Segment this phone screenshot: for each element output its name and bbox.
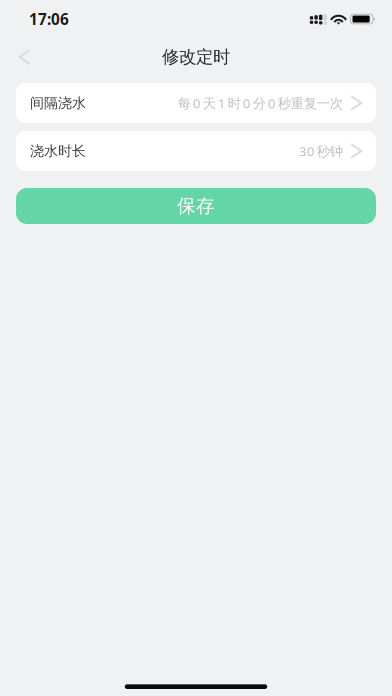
button[interactable]: Back [0, 38, 45, 76]
staticText: 17:06 [29, 9, 69, 29]
staticText: 保存 [177, 194, 215, 218]
staticText: 30 秒钟 [299, 142, 343, 160]
staticText: 每 0 天 1 时 0 分 0 秒重复一次 [178, 94, 343, 112]
staticText: 间隔浇水 [30, 94, 86, 112]
button[interactable]: 保存 [16, 188, 376, 224]
staticText: 修改定时 [162, 46, 230, 68]
button[interactable]: 浇水时长 [16, 131, 376, 171]
staticText: 浇水时长 [30, 142, 86, 160]
button[interactable]: 间隔浇水 [16, 83, 376, 123]
